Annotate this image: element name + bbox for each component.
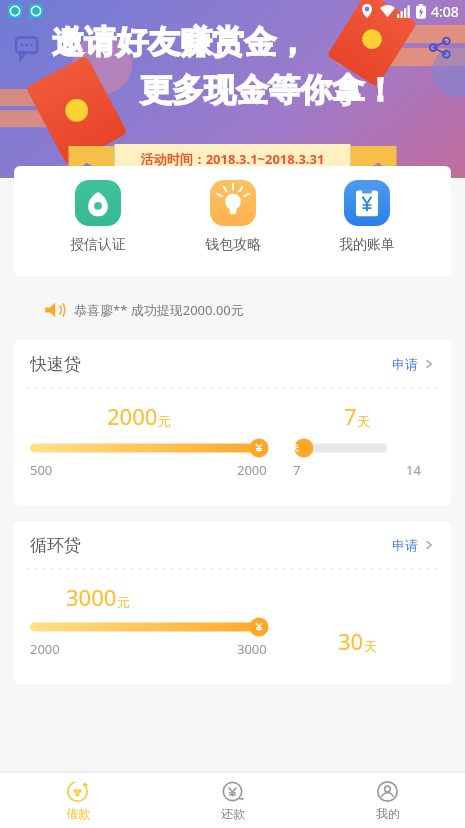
button[interactable]: 申请: [392, 356, 435, 372]
button[interactable]: Share: [423, 32, 453, 62]
staticText: 快速贷: [30, 354, 81, 375]
staticText: 更多现金等你拿！: [140, 70, 465, 110]
staticText: 授信认证: [70, 236, 126, 254]
button[interactable]: 钱包攻略: [183, 180, 283, 254]
staticText: 借款: [66, 806, 90, 821]
staticText: 4:08: [431, 2, 459, 21]
staticText: 我的账单: [339, 236, 395, 254]
staticText: 2000: [107, 401, 158, 431]
staticText: 2000: [30, 640, 60, 658]
button[interactable]: Messages: [10, 30, 44, 64]
button[interactable]: 还款: [155, 773, 310, 828]
staticText: 天: [357, 413, 370, 429]
button[interactable]: 我的: [310, 773, 465, 828]
staticText: 活动时间：2018.3.1~2018.3.31: [0, 150, 465, 168]
staticText: 3000: [66, 582, 117, 612]
button[interactable]: 恭喜廖** 成功提现2000.00元: [0, 290, 465, 330]
staticText: 邀请好友赚赏金，: [52, 22, 465, 62]
staticText: 7: [344, 401, 357, 431]
staticText: 元: [158, 413, 171, 429]
staticText: 恭喜廖** 成功提现2000.00元: [74, 301, 244, 319]
staticText: 2000: [237, 461, 267, 479]
button[interactable]: 授信认证: [48, 180, 148, 254]
staticText: 钱包攻略: [205, 236, 261, 254]
staticText: 天: [291, 443, 299, 453]
staticText: 500: [30, 461, 53, 479]
staticText: 循环贷: [30, 535, 81, 556]
staticText: 还款: [221, 806, 245, 821]
staticText: 申请: [392, 356, 418, 372]
staticText: 30: [338, 626, 364, 656]
button[interactable]: 借款: [0, 773, 155, 828]
staticText: 7: [293, 461, 301, 479]
staticText: 14: [406, 461, 421, 479]
button[interactable]: 我的账单: [317, 180, 417, 254]
staticText: 天: [364, 638, 377, 654]
button[interactable]: 循环贷: [14, 521, 451, 684]
button[interactable]: 快速贷: [14, 340, 451, 505]
staticText: 3000: [237, 640, 267, 658]
staticText: 元: [117, 594, 130, 610]
staticText: 我的: [376, 806, 400, 821]
button[interactable]: 申请: [392, 537, 435, 553]
staticText: 申请: [392, 537, 418, 553]
